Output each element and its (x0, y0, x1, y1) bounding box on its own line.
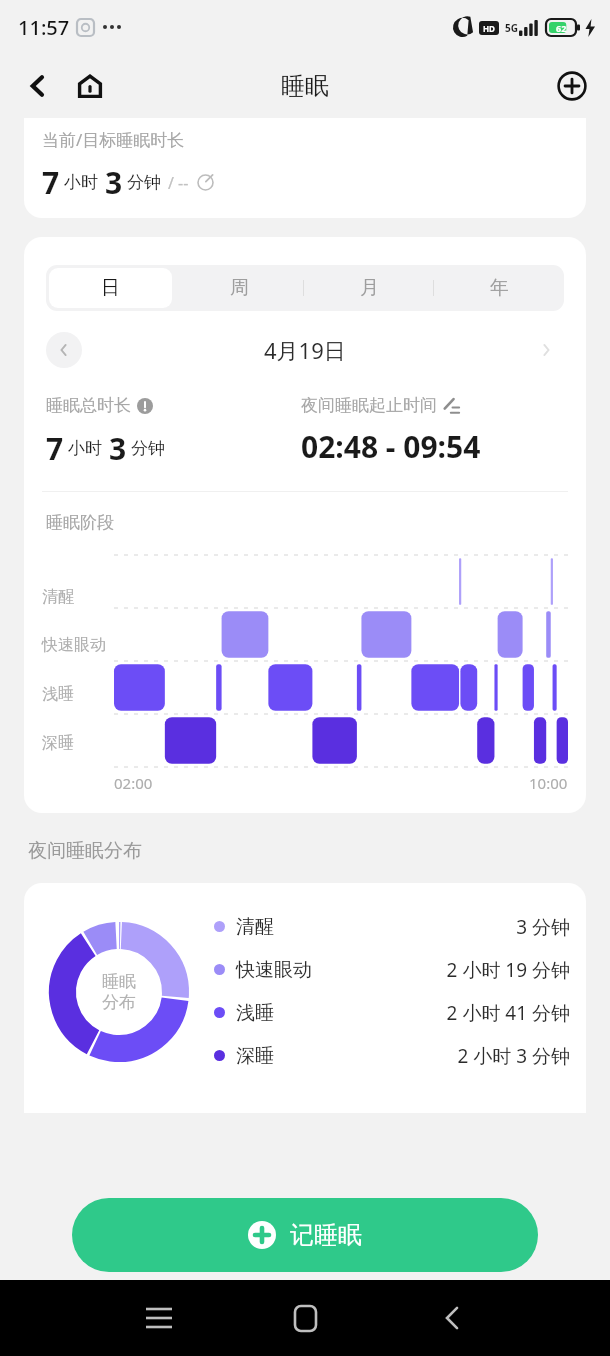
staticText: HD (483, 23, 495, 34)
staticText: 浅睡 (236, 1001, 274, 1025)
button[interactable]: 日 (49, 268, 172, 308)
staticText: 记睡眠 (290, 1220, 362, 1250)
staticText: 月 (360, 276, 379, 300)
button[interactable]: 清醒 (214, 905, 570, 948)
button[interactable]: Recents (131, 1290, 187, 1346)
button[interactable]: 记睡眠 (72, 1198, 538, 1272)
button[interactable]: 浅睡 (214, 991, 570, 1034)
staticText: 2 小时 3 分钟 (457, 1043, 570, 1069)
staticText: 睡眠总时长 (46, 395, 131, 416)
staticText: 3 分钟 (516, 914, 570, 940)
button[interactable]: Next day (528, 332, 564, 368)
staticText: 02:48 - 09:54 (301, 426, 481, 467)
staticText: 夜间睡眠起止时间 (301, 395, 437, 416)
staticText: 5G (505, 21, 518, 35)
staticText: 深睡 (42, 733, 74, 753)
button[interactable]: 年 (437, 268, 561, 308)
staticText: 11:57 (18, 14, 70, 41)
button[interactable]: 快速眼动 (214, 948, 570, 991)
button[interactable]: 深睡 (214, 1034, 570, 1077)
staticText: 2 小时 41 分钟 (446, 1000, 570, 1026)
staticText: 深睡 (236, 1044, 274, 1068)
staticText: 分钟 (131, 438, 165, 459)
staticText: 7 (42, 162, 60, 203)
staticText: 3 (105, 162, 123, 203)
staticText: 快速眼动 (42, 635, 106, 655)
staticText: 日 (101, 276, 120, 300)
staticText: / -- (168, 172, 189, 194)
button[interactable]: 当前/目标睡眠时长 (24, 118, 586, 218)
staticText: 3 (109, 428, 127, 469)
staticText: 10:00 (529, 773, 568, 793)
button[interactable]: Previous day (46, 332, 82, 368)
staticText: 周 (230, 276, 249, 300)
staticText: 02:00 (114, 773, 153, 793)
button[interactable]: 周 (178, 268, 301, 308)
staticText: 睡眠 (102, 971, 136, 992)
button[interactable]: Back (18, 66, 58, 106)
staticText: 浅睡 (42, 684, 74, 704)
button[interactable]: Back (424, 1290, 480, 1346)
staticText: 2 小时 19 分钟 (446, 957, 570, 983)
staticText: 62 (556, 22, 567, 34)
staticText: 年 (490, 276, 509, 300)
staticText: 当前/目标睡眠时长 (42, 128, 185, 151)
staticText: 睡眠阶段 (46, 512, 114, 533)
staticText: 小时 (64, 172, 98, 193)
staticText: 夜间睡眠分布 (28, 839, 142, 863)
button[interactable]: 月 (307, 268, 431, 308)
staticText: 清醒 (42, 587, 74, 607)
staticText: 快速眼动 (236, 958, 312, 982)
button[interactable]: Home (68, 64, 112, 108)
staticText: 分布 (102, 992, 136, 1013)
staticText: 清醒 (236, 915, 274, 939)
staticText: 7 (46, 428, 64, 469)
button[interactable]: Home (277, 1290, 333, 1346)
staticText: 分钟 (127, 172, 161, 193)
staticText: 睡眠 (281, 71, 329, 101)
staticText: 4月19日 (264, 335, 346, 365)
button[interactable]: Add (550, 64, 594, 108)
staticText: 小时 (68, 438, 102, 459)
